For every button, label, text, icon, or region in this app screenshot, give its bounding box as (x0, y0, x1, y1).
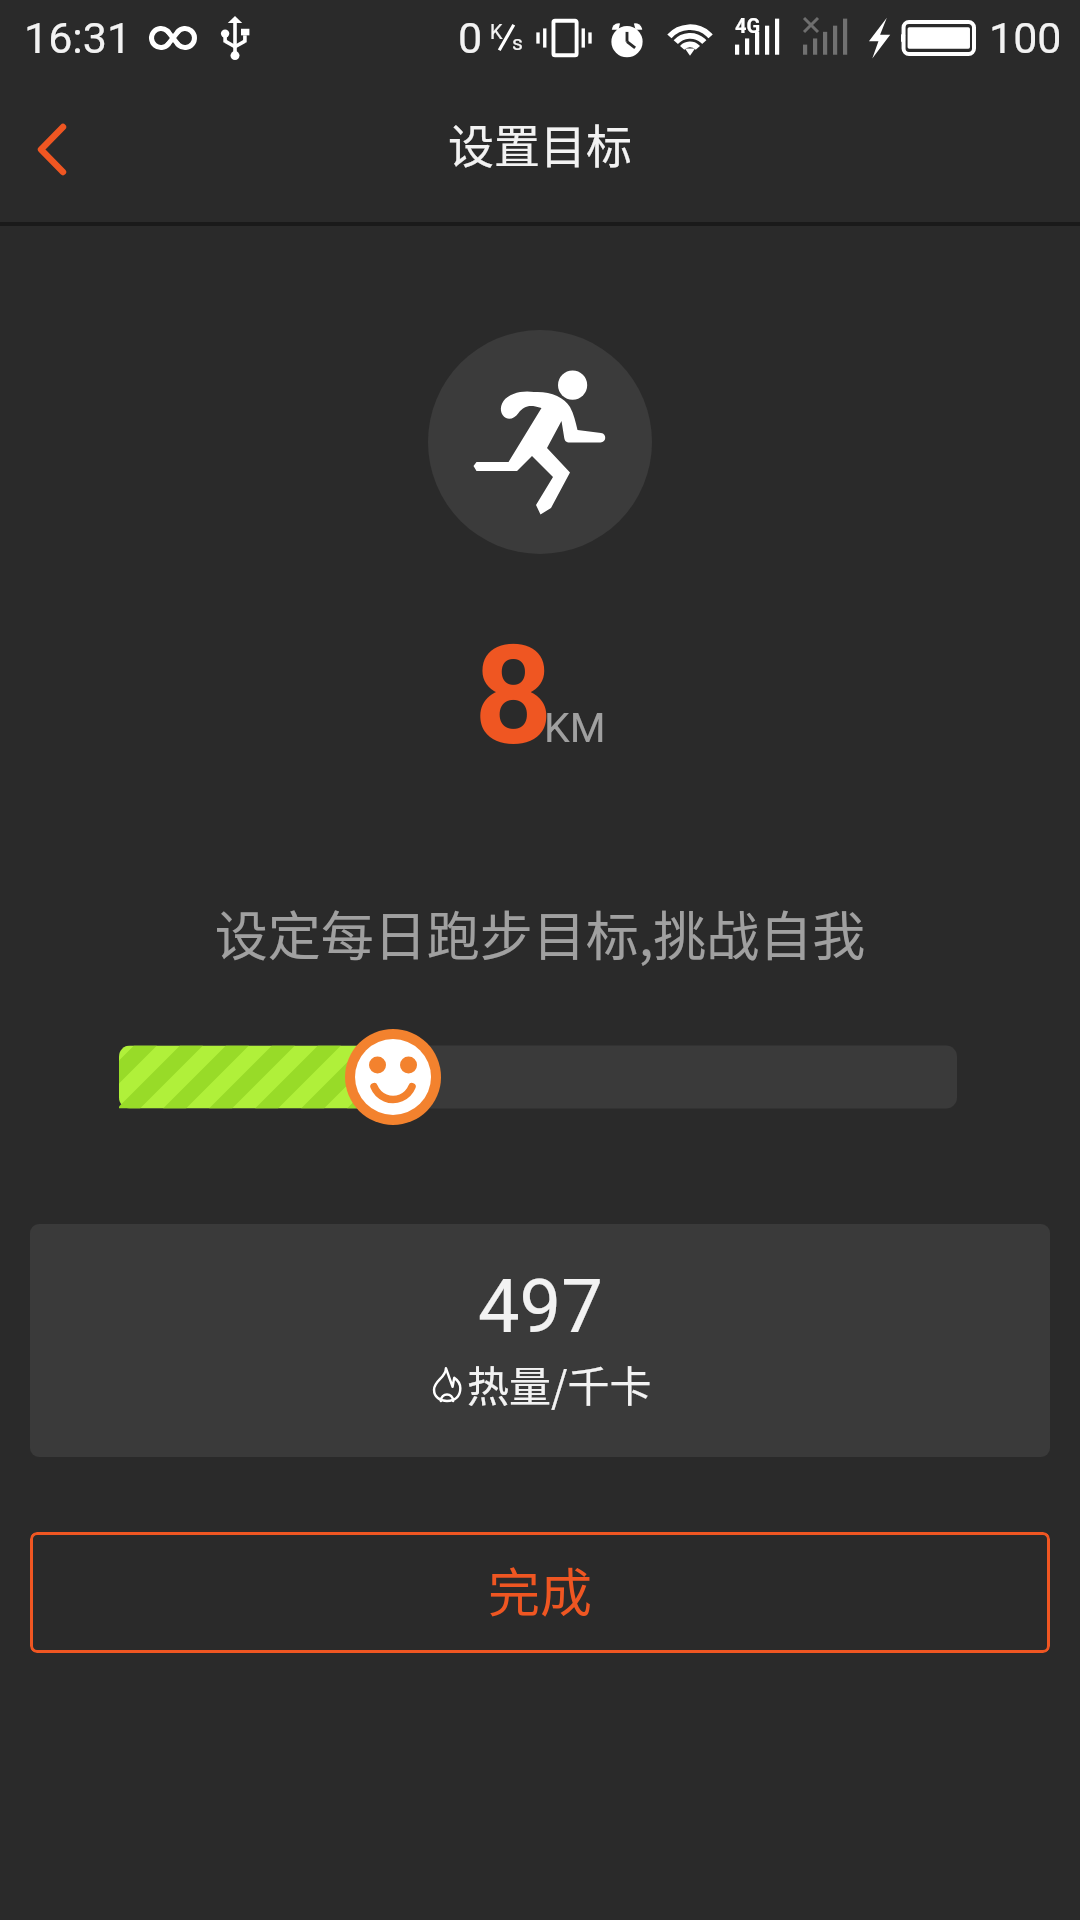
staticText: 4G (735, 14, 761, 37)
staticText: s (512, 31, 523, 56)
staticText: 设定每日跑步目标,挑战自我 (0, 895, 1080, 972)
staticText: 100 (989, 13, 1062, 63)
staticText: K (490, 20, 503, 43)
staticText: 0 (458, 13, 483, 63)
staticText: KM (544, 704, 606, 752)
staticText: 热量/千卡 (467, 1353, 652, 1414)
staticText: 16:31 (24, 13, 132, 63)
button[interactable]: Distance goal slider (0, 1017, 1080, 1137)
button[interactable]: Back (0, 76, 104, 222)
button[interactable]: 完成 (30, 1532, 1050, 1653)
staticText: 完成 (488, 1552, 593, 1627)
staticText: 8 (474, 616, 553, 776)
button[interactable]: 497 (30, 1224, 1050, 1457)
button[interactable]: Running goal (428, 330, 652, 554)
staticText: 设置目标 (448, 110, 632, 177)
staticText: 497 (478, 1263, 603, 1350)
